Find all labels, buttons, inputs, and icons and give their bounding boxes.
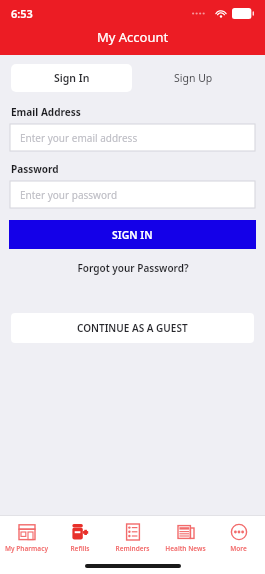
staticText: More: [230, 544, 247, 553]
button[interactable]: CONTINUE AS A GUEST: [11, 313, 254, 343]
staticText: CONTINUE AS A GUEST: [77, 321, 188, 335]
staticText: Enter your password: [20, 188, 118, 202]
button[interactable]: Enter your email address: [10, 124, 255, 151]
staticText: Sign Up: [174, 71, 213, 85]
button[interactable]: Reminders: [106, 522, 159, 574]
staticText: SIGN IN: [112, 228, 153, 242]
staticText: Forgot your Password?: [77, 261, 189, 275]
button[interactable]: Health News: [159, 522, 212, 574]
staticText: 6:53: [11, 6, 33, 21]
staticText: Refills: [70, 544, 90, 553]
button[interactable]: Refills: [53, 522, 106, 574]
staticText: Health News: [165, 544, 206, 553]
staticText: Enter your email address: [20, 131, 138, 145]
staticText: Reminders: [115, 544, 150, 553]
button[interactable]: More: [212, 522, 265, 574]
button[interactable]: Enter your password: [10, 181, 255, 208]
button[interactable]: Sign In: [11, 64, 132, 92]
staticText: Password: [11, 162, 59, 176]
button[interactable]: Forgot your Password?: [0, 261, 265, 275]
staticText: Email Address: [11, 105, 81, 119]
staticText: My Account: [97, 28, 169, 46]
staticText: Sign In: [54, 71, 90, 85]
button[interactable]: SIGN IN: [9, 220, 256, 249]
button[interactable]: Sign Up: [132, 64, 254, 92]
button[interactable]: My Pharmacy: [0, 522, 53, 574]
staticText: My Pharmacy: [5, 544, 48, 553]
